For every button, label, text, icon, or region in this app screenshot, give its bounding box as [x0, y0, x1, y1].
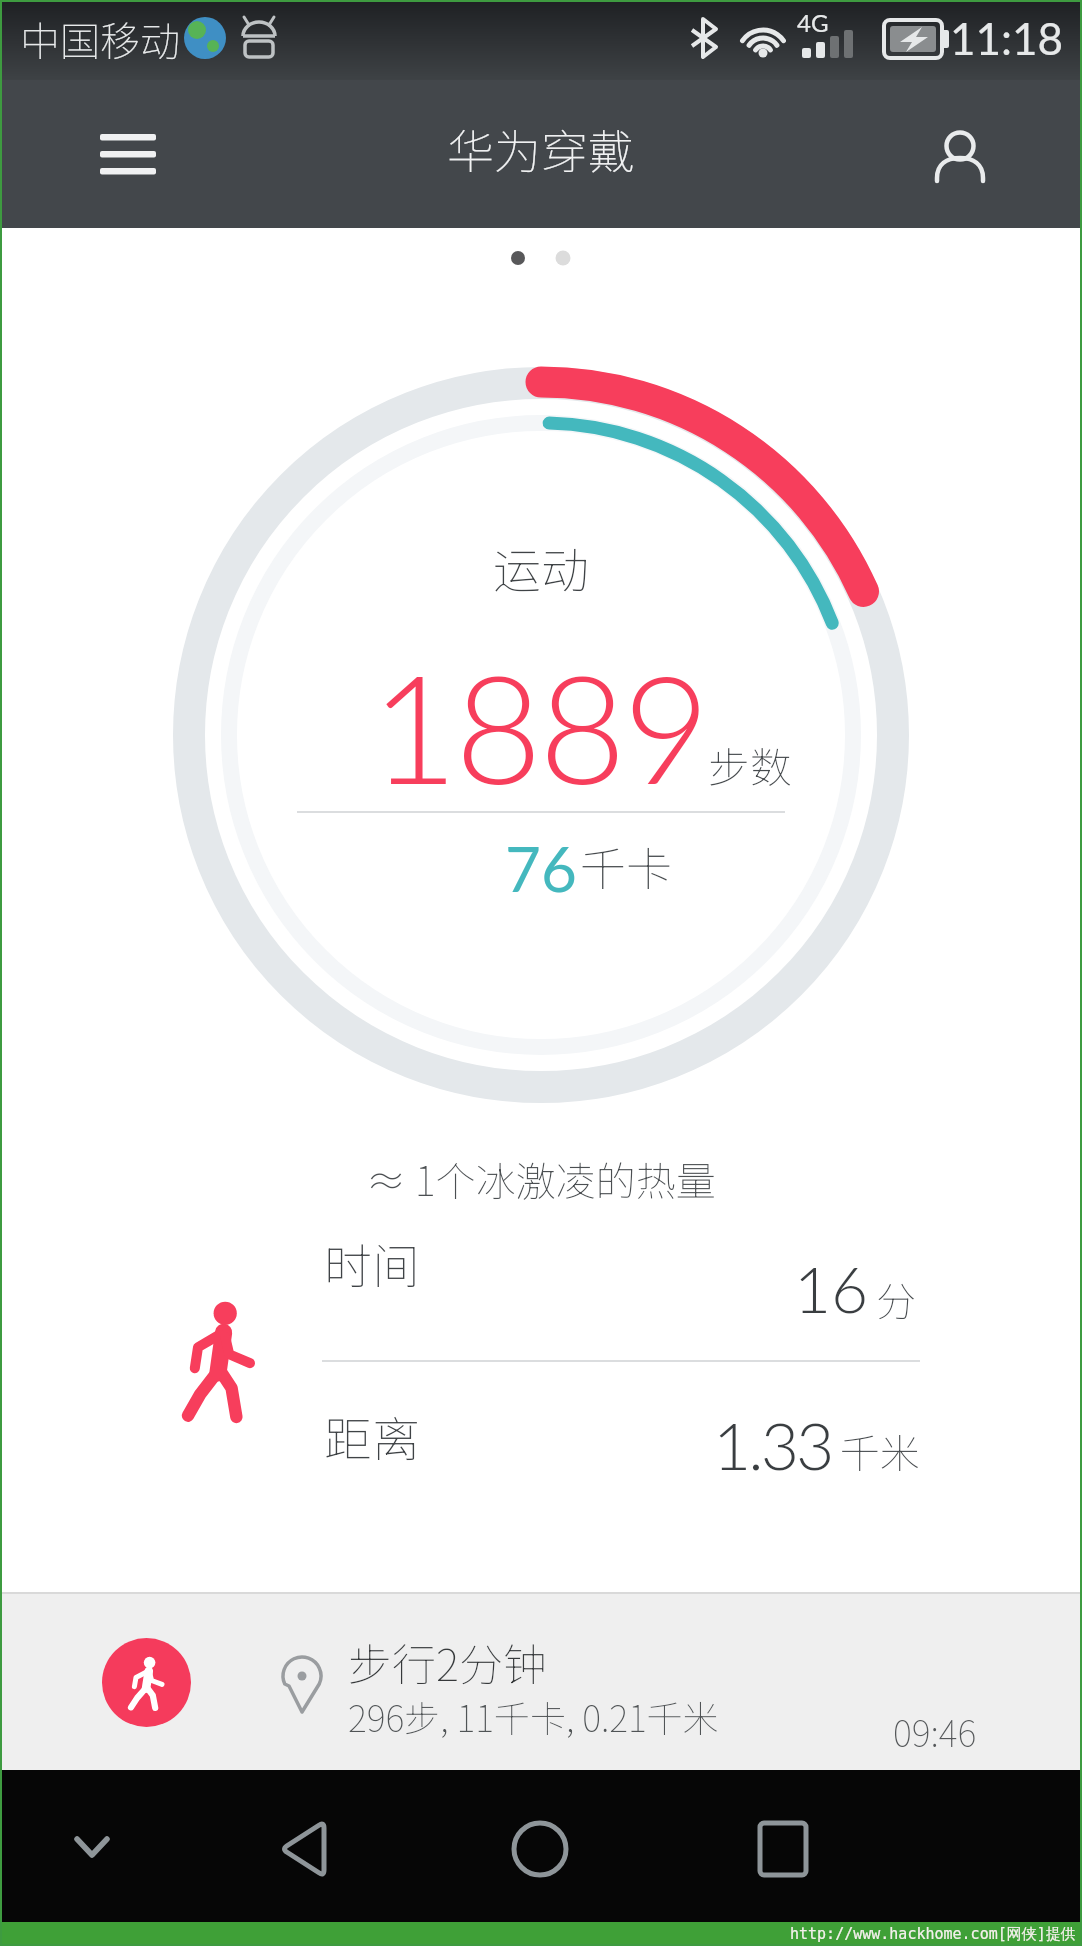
staticText: 千卡 [580, 833, 672, 900]
button[interactable] [926, 116, 994, 192]
staticText: 华为穿戴 [447, 114, 635, 182]
button[interactable] [88, 120, 168, 188]
button[interactable]: 步行2分钟 [0, 1592, 1082, 1770]
staticText: 4G [797, 8, 829, 37]
button[interactable] [260, 1802, 360, 1892]
staticText: 296步, 11千卡, 0.21千米 [348, 1690, 719, 1742]
button[interactable] [733, 1802, 833, 1892]
staticText: 步行2分钟 [348, 1630, 547, 1694]
button[interactable] [60, 1820, 124, 1860]
staticText: 时间 [324, 1228, 421, 1298]
button[interactable] [490, 1802, 590, 1892]
staticText: 1.33 [713, 1405, 832, 1484]
staticText: 09:46 [893, 1705, 977, 1757]
staticText: ≈ 1个冰激凌的热量 [366, 1150, 716, 1208]
staticText: 距离 [324, 1401, 421, 1471]
staticText: 11:18 [950, 12, 1064, 65]
staticText: 千米 [840, 1422, 920, 1480]
staticText: 1889 [371, 636, 708, 816]
staticText: 步数 [708, 734, 793, 795]
staticText: 中国移动 [20, 10, 180, 68]
staticText: http://www.hackhome.com[网侠]提供 [790, 1925, 1076, 1944]
staticText: 76 [505, 831, 577, 905]
staticText: 运动 [493, 532, 590, 602]
staticText: 分 [876, 1270, 916, 1328]
staticText: 16 [794, 1250, 869, 1327]
